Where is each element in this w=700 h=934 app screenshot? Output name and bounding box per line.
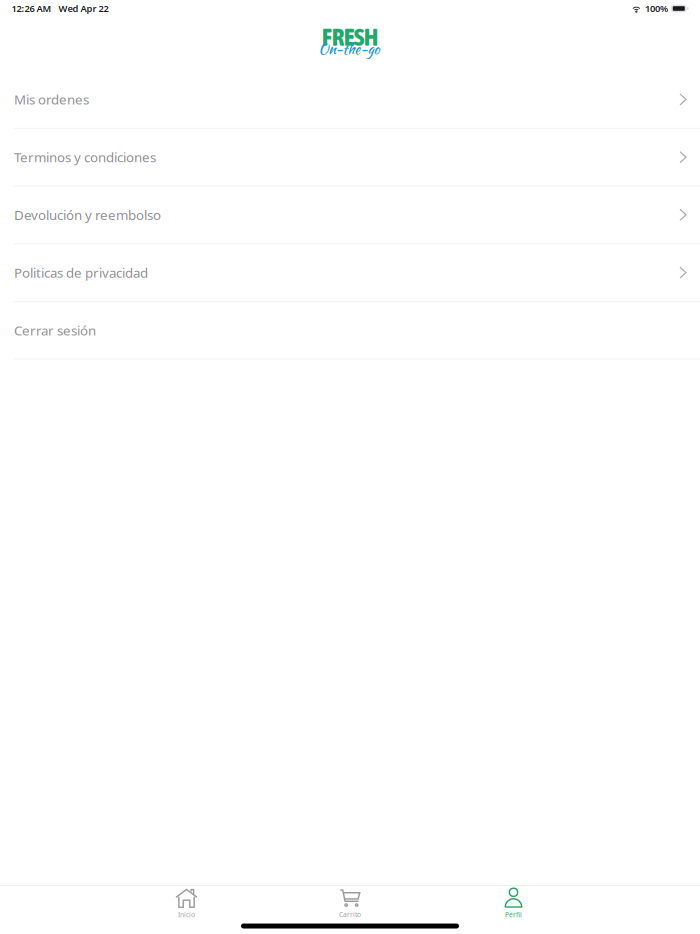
button[interactable]: Inicio <box>105 886 268 918</box>
staticText: Inicio <box>178 910 195 919</box>
button[interactable]: Mis ordenes <box>0 71 700 129</box>
staticText: Terminos y condiciones <box>14 148 156 166</box>
staticText: Mis ordenes <box>14 91 89 108</box>
staticText: Perfil <box>505 910 522 919</box>
button[interactable]: Cerrar sesión <box>0 302 700 359</box>
staticText: On-the-go <box>318 39 379 59</box>
staticText: Carrito <box>339 910 361 919</box>
staticText: Wed Apr 22 <box>58 2 108 15</box>
staticText: 12:26 AM <box>11 2 51 15</box>
staticText: Cerrar sesión <box>14 321 96 339</box>
button[interactable]: Politicas de privacidad <box>0 244 700 302</box>
button[interactable]: Carrito <box>268 886 432 918</box>
button[interactable]: Terminos y condiciones <box>0 129 700 186</box>
staticText: FRESH <box>322 23 378 51</box>
button[interactable]: Devolución y reembolso <box>0 186 700 244</box>
staticText: Politicas de privacidad <box>14 264 148 281</box>
button[interactable]: Perfil <box>432 886 595 918</box>
staticText: Devolución y reembolso <box>14 206 161 224</box>
staticText: 100% <box>645 2 668 15</box>
